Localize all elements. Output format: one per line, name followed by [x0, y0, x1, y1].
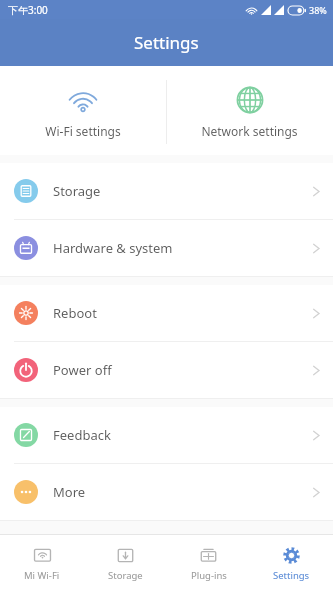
staticText: Wi-Fi settings — [45, 123, 121, 139]
staticText: Feedback — [53, 426, 111, 444]
button[interactable]: Settings — [250, 535, 333, 592]
staticText: More — [53, 483, 86, 501]
staticText: Plug-ins — [191, 569, 227, 582]
staticText: 38% — [309, 4, 327, 16]
staticText: Reboot — [53, 304, 97, 322]
staticText: Settings — [273, 569, 310, 582]
button[interactable]: Storage — [84, 535, 167, 592]
button[interactable]: Plug-ins — [167, 535, 250, 592]
button[interactable]: Storage — [0, 163, 333, 219]
button[interactable]: Power off — [0, 342, 333, 398]
button[interactable]: Hardware & system — [0, 220, 333, 276]
staticText: Storage — [53, 182, 101, 200]
button[interactable]: More — [0, 464, 333, 520]
staticText: Settings — [134, 31, 199, 54]
staticText: Mi Wi-Fi — [24, 569, 60, 582]
button[interactable]: Network settings — [166, 66, 333, 155]
staticText: Network settings — [201, 123, 298, 139]
button[interactable]: Mi Wi-Fi — [0, 535, 84, 592]
staticText: Storage — [108, 569, 143, 582]
button[interactable]: Wi-Fi settings — [0, 66, 166, 155]
button[interactable]: Feedback — [0, 407, 333, 463]
staticText: Hardware & system — [53, 239, 173, 257]
button[interactable]: Reboot — [0, 285, 333, 341]
staticText: Power off — [53, 361, 112, 379]
staticText: 下午3:00 — [8, 3, 48, 17]
